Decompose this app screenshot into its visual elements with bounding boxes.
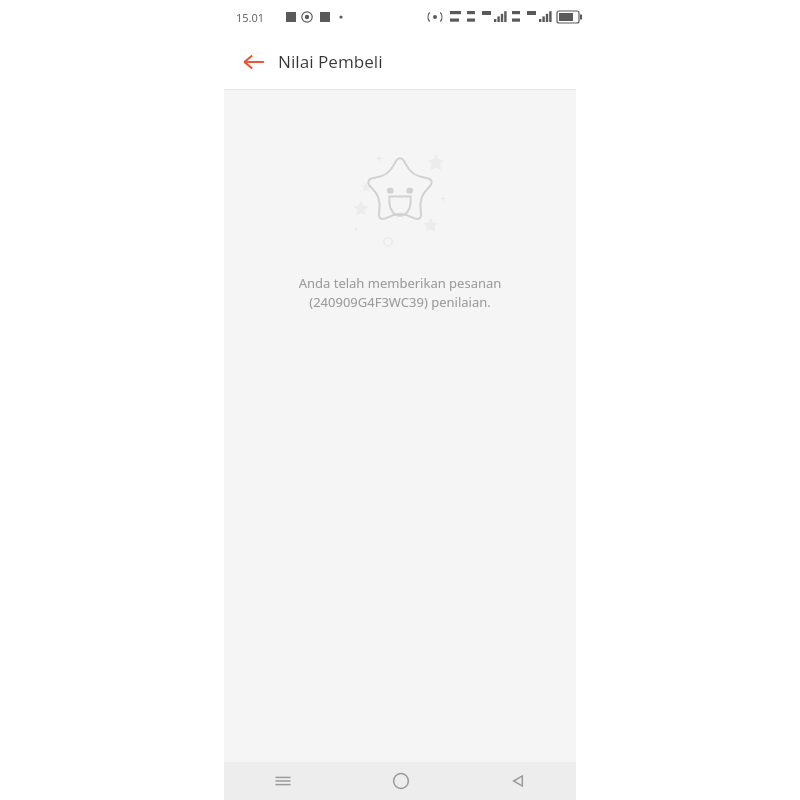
- button[interactable]: Recent apps: [224, 762, 342, 800]
- staticText: 15.01: [236, 10, 265, 25]
- button[interactable]: Back: [236, 44, 272, 80]
- button[interactable]: Home: [342, 762, 459, 800]
- button[interactable]: Back: [459, 762, 576, 800]
- staticText: Nilai Pembeli: [278, 50, 383, 73]
- staticText: Anda telah memberikan pesanan (240909G4F…: [224, 274, 576, 311]
